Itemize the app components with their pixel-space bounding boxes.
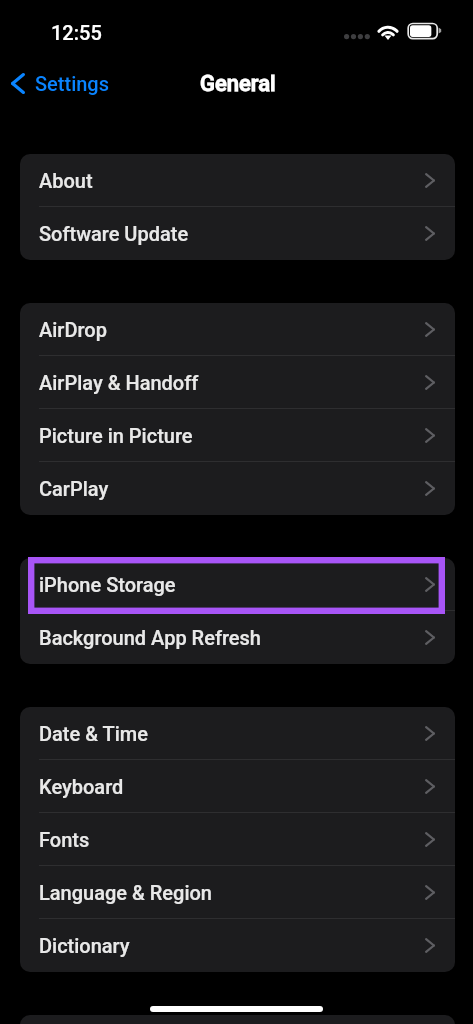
button[interactable]: Fonts [20, 813, 455, 866]
staticText: Background App Refresh [39, 626, 261, 649]
other: Highlighted iPhone Storage [28, 557, 445, 614]
button[interactable]: Keyboard [20, 760, 455, 813]
staticText: 12:55 [51, 21, 102, 44]
button[interactable]: Language & Region [20, 866, 455, 919]
staticText: Picture in Picture [39, 424, 193, 447]
staticText: Settings [35, 72, 110, 95]
staticText: Keyboard [39, 775, 124, 798]
staticText: About [39, 169, 93, 192]
button[interactable]: CarPlay [20, 462, 455, 515]
button[interactable]: Background App Refresh [20, 611, 455, 664]
staticText: General [200, 71, 276, 97]
button[interactable]: Picture in Picture [20, 409, 455, 462]
button[interactable]: Settings [4, 68, 118, 99]
staticText: CarPlay [39, 477, 109, 500]
staticText: Software Update [39, 222, 189, 245]
staticText: Dictionary [39, 934, 130, 957]
button[interactable]: AirDrop [20, 303, 455, 356]
staticText: iPhone Storage [39, 573, 176, 596]
button[interactable]: Software Update [20, 207, 455, 260]
staticText: Date & Time [39, 722, 148, 745]
button[interactable]: Date & Time [20, 707, 455, 760]
staticText: Language & Region [39, 881, 212, 904]
button[interactable]: Accessibility [20, 1015, 455, 1024]
staticText: Fonts [39, 828, 90, 851]
staticText: AirPlay & Handoff [39, 371, 199, 394]
button[interactable]: iPhone Storage [20, 558, 455, 611]
button[interactable]: About [20, 154, 455, 207]
button[interactable]: AirPlay & Handoff [20, 356, 455, 409]
staticText: AirDrop [39, 318, 107, 341]
button[interactable]: Dictionary [20, 919, 455, 972]
